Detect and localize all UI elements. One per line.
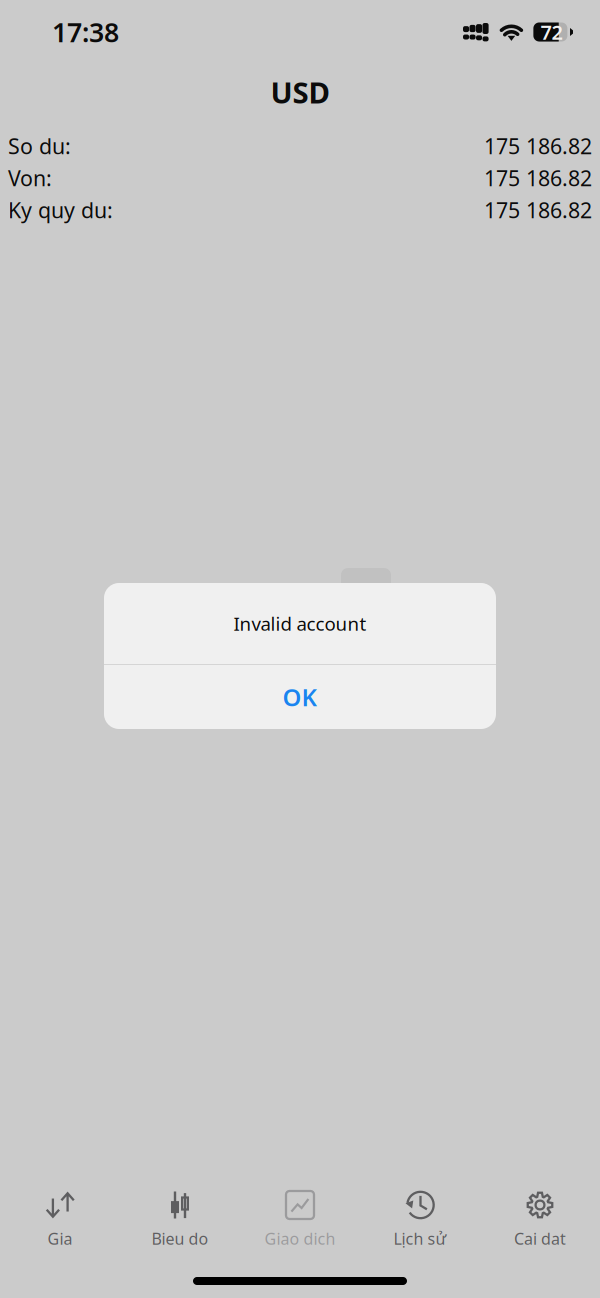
staticText: Lịch sử	[393, 1228, 446, 1249]
button[interactable]: Cai dat	[480, 1186, 600, 1264]
staticText: Ky quy du:	[8, 196, 113, 224]
staticText: USD	[270, 72, 329, 111]
staticText: 17:38	[52, 14, 119, 50]
staticText: Von:	[8, 164, 52, 192]
staticText: Cai dat	[514, 1228, 566, 1249]
staticText: Invalid account	[233, 611, 366, 636]
staticText: 175 186.82	[484, 132, 592, 160]
staticText: Gia	[47, 1228, 72, 1249]
staticText: 72	[540, 19, 562, 45]
staticText: So du:	[8, 132, 71, 160]
staticText: 175 186.82	[484, 196, 592, 224]
button[interactable]: Giao dich	[240, 1186, 360, 1264]
staticText: Giao dich	[264, 1228, 335, 1249]
staticText: OK	[282, 681, 317, 713]
staticText: Bieu do	[151, 1228, 208, 1249]
button[interactable]: Gia	[0, 1186, 120, 1264]
button[interactable]: OK	[104, 665, 496, 729]
button[interactable]: Lịch sử	[360, 1186, 480, 1264]
button[interactable]: Bieu do	[120, 1186, 240, 1264]
staticText: 175 186.82	[484, 164, 592, 192]
